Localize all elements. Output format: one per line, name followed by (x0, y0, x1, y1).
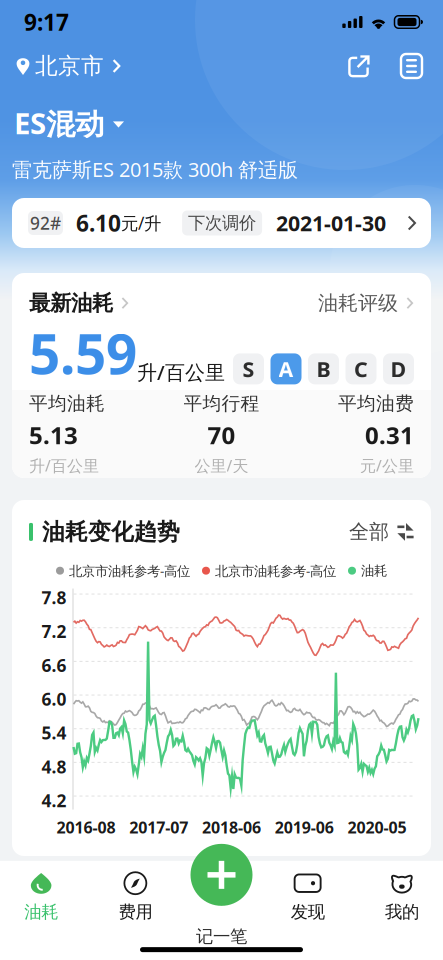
button[interactable]: 分享 (345, 52, 372, 79)
staticText: 最新油耗 (29, 290, 113, 316)
staticText: 2017-07 (129, 816, 188, 838)
staticText: 5.59 (29, 317, 137, 389)
staticText: A (278, 355, 293, 383)
staticText: 4.8 (41, 755, 66, 778)
button[interactable]: 油耗评级 (318, 291, 414, 315)
staticText: 2020-05 (347, 816, 406, 838)
staticText: 公里/天 (194, 455, 248, 476)
button[interactable]: 报告 (398, 52, 425, 79)
staticText: 油耗变化趋势 (42, 518, 180, 546)
staticText: 6.6 (41, 654, 66, 677)
staticText: 平均油费 (338, 392, 414, 415)
button[interactable]: 92# (12, 198, 431, 248)
button[interactable]: 全部 (349, 520, 414, 544)
staticText: 记一笔 (196, 926, 247, 947)
button[interactable]: 油耗 (0, 873, 88, 921)
staticText: 9:17 (24, 7, 69, 37)
staticText: 2016-08 (56, 816, 115, 838)
staticText: 平均油耗 (29, 392, 105, 415)
staticText: 0.31 (365, 419, 414, 451)
staticText: 7.2 (41, 620, 66, 643)
staticText: C (354, 355, 368, 383)
staticText: 元/升 (121, 211, 161, 234)
staticText: 升/百公里 (29, 455, 99, 476)
staticText: S (242, 355, 254, 383)
staticText: 6.0 (41, 687, 66, 710)
staticText: 元/公里 (360, 455, 414, 476)
staticText: 70 (207, 419, 235, 451)
staticText: 北京市 (35, 52, 104, 80)
staticText: 5.4 (41, 721, 66, 744)
button[interactable]: 北京市 (12, 48, 125, 84)
staticText: 5.13 (29, 419, 78, 451)
staticText: 2018-06 (202, 816, 261, 838)
staticText: 下次调价 (188, 212, 256, 234)
staticText: 4.2 (41, 789, 66, 812)
staticText: 北京市油耗参考-高位 (69, 562, 190, 579)
button[interactable]: 记一笔 (190, 844, 252, 906)
staticText: 全部 (349, 520, 389, 544)
staticText: 费用 (118, 901, 152, 922)
staticText: 6.10 (76, 208, 121, 238)
button[interactable]: 发现 (260, 873, 355, 921)
staticText: 油耗评级 (318, 291, 398, 315)
staticText: 发现 (291, 901, 325, 922)
staticText: 平均行程 (183, 392, 259, 415)
staticText: 升/百公里 (137, 359, 225, 385)
staticText: 2021-01-30 (276, 209, 386, 237)
staticText: ES混动 (14, 103, 104, 142)
button[interactable]: 我的 (355, 873, 443, 921)
button[interactable]: 费用 (88, 873, 182, 921)
button[interactable]: ES混动 (0, 108, 144, 138)
staticText: 雷克萨斯ES 2015款 300h 舒适版 (12, 156, 298, 183)
staticText: D (390, 355, 406, 383)
staticText: 92# (30, 211, 61, 234)
staticText: 我的 (385, 901, 419, 922)
staticText: B (316, 355, 330, 383)
staticText: 北京市油耗参考-高位 (215, 562, 336, 579)
staticText: 油耗 (24, 901, 58, 922)
button[interactable]: 最新油耗 (29, 290, 129, 316)
staticText: 油耗 (361, 562, 387, 579)
staticText: 7.8 (41, 586, 66, 609)
staticText: 2019-06 (275, 816, 334, 838)
